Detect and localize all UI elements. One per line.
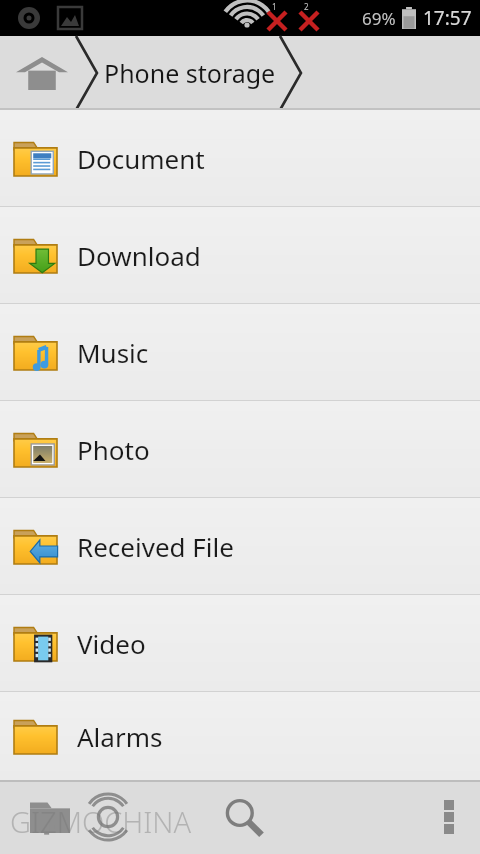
button[interactable]: More options <box>418 780 480 854</box>
button[interactable]: Document <box>0 110 480 206</box>
button[interactable]: Video <box>0 595 480 691</box>
button[interactable]: Home <box>0 36 84 110</box>
staticText: 17:57 <box>423 5 472 31</box>
staticText: Music <box>77 335 149 370</box>
staticText: Phone storage <box>104 56 276 90</box>
staticText: Photo <box>77 432 150 467</box>
staticText: 69% <box>362 7 396 30</box>
button[interactable]: Search <box>210 780 276 854</box>
staticText: GIZMOCHINA <box>10 802 192 841</box>
staticText: Alarms <box>77 719 163 754</box>
staticText: Video <box>77 626 146 661</box>
staticText: 2 <box>304 1 309 12</box>
button[interactable]: Phone storage <box>104 36 282 110</box>
staticText: Document <box>77 141 205 176</box>
button[interactable]: Music <box>0 304 480 400</box>
button[interactable]: Remote <box>74 780 142 854</box>
staticText: 1 <box>272 1 277 12</box>
button[interactable]: Alarms <box>0 692 480 780</box>
staticText: Received File <box>77 529 234 564</box>
button[interactable]: Download <box>0 207 480 303</box>
button[interactable]: Photo <box>0 401 480 497</box>
button[interactable]: Received File <box>0 498 480 594</box>
staticText: Download <box>77 238 201 273</box>
button[interactable]: New folder <box>14 780 86 854</box>
